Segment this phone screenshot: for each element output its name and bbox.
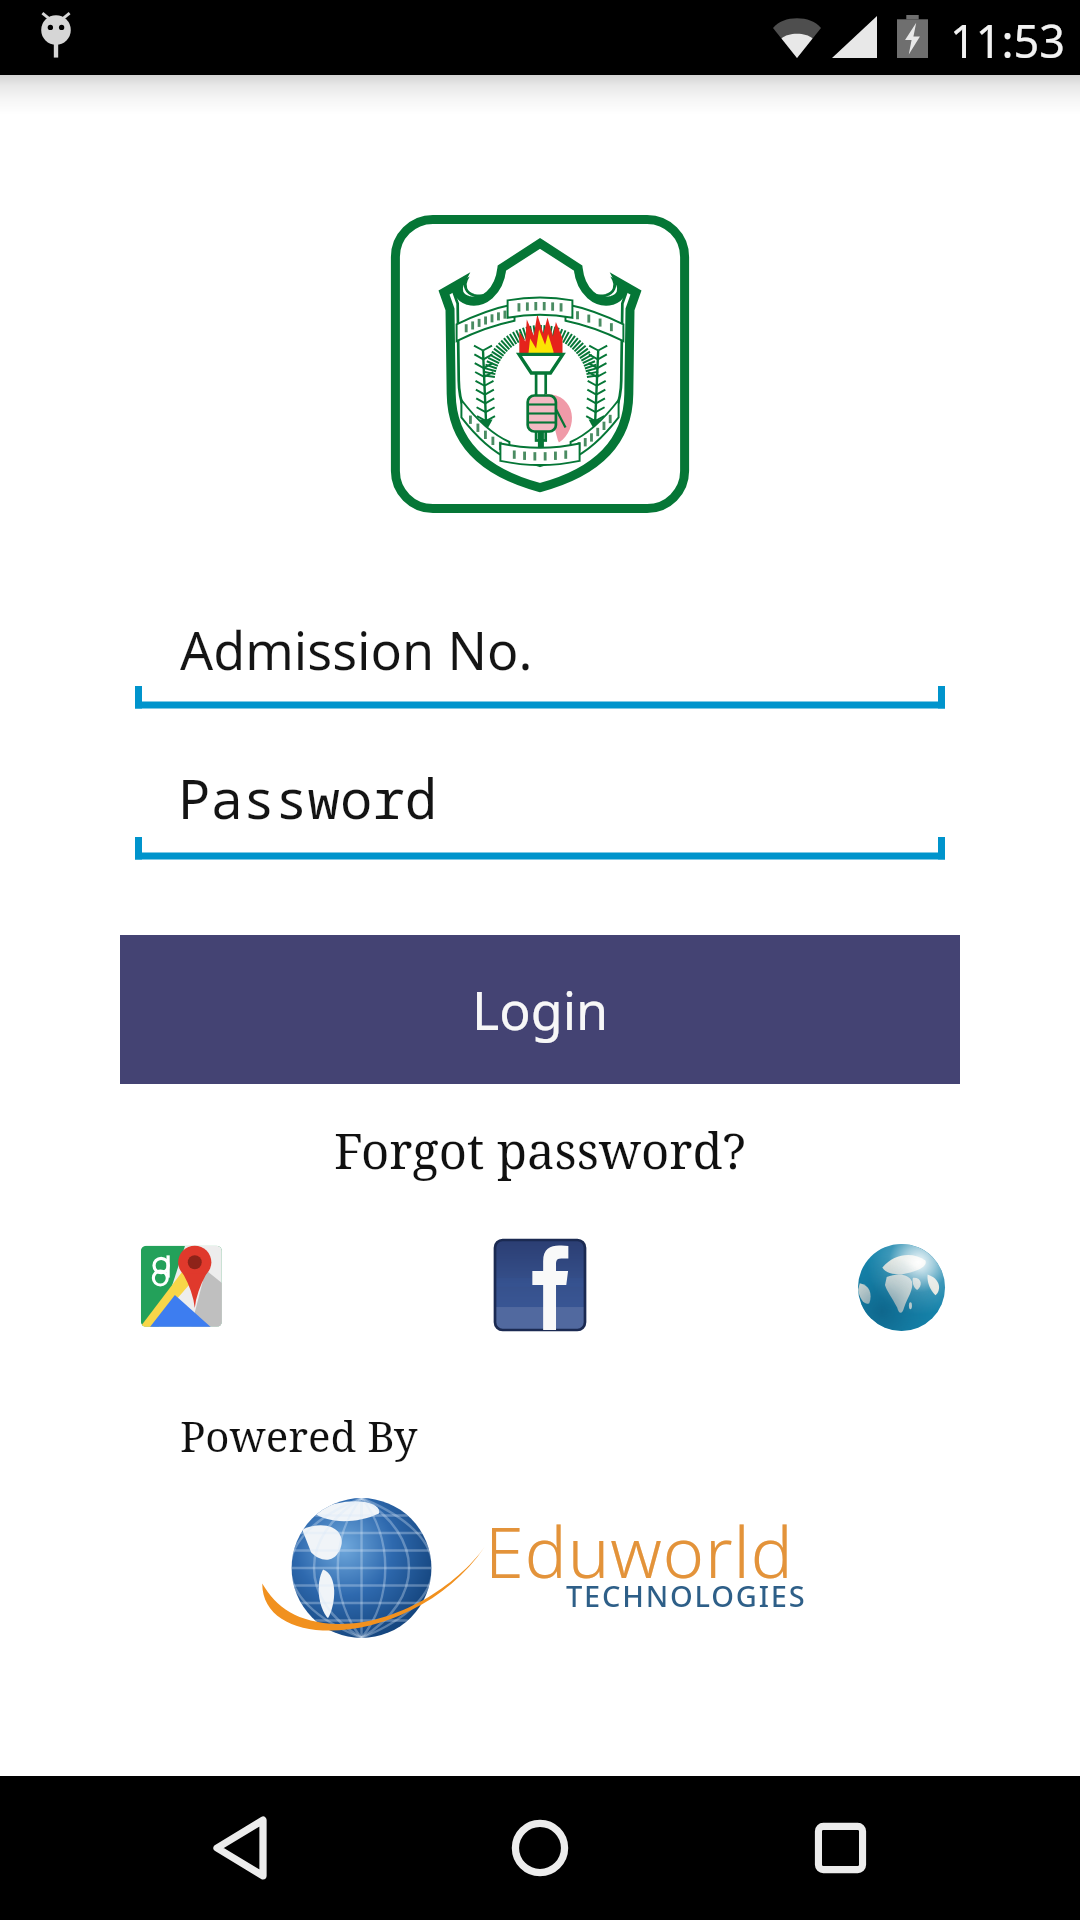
staticText: 11:53	[950, 10, 1066, 71]
button[interactable]: Login	[120, 935, 960, 1084]
button[interactable]: Home	[450, 1776, 630, 1920]
button[interactable]: Back	[150, 1776, 330, 1920]
staticText: Eduworld	[485, 1503, 794, 1598]
button[interactable]: Forgot password?	[310, 1111, 770, 1190]
staticText: Login	[472, 974, 609, 1045]
staticText: Powered By	[180, 1407, 418, 1464]
button[interactable]: Recent apps	[750, 1776, 930, 1920]
button[interactable]: Admission No.	[135, 600, 945, 715]
button[interactable]: Password	[135, 747, 945, 862]
staticText: TECHNOLOGIES	[566, 1576, 807, 1615]
staticText: Forgot password?	[334, 1117, 746, 1184]
button[interactable]: Open Website	[846, 1232, 956, 1342]
staticText: Password	[178, 761, 438, 835]
button[interactable]: Open Maps	[123, 1224, 233, 1334]
button[interactable]: Open Facebook	[485, 1230, 595, 1340]
staticText: Admission No.	[180, 614, 533, 685]
